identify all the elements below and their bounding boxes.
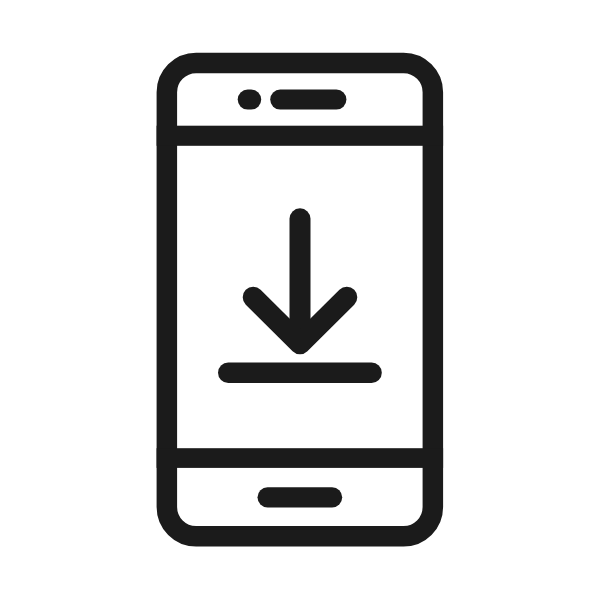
button[interactable]: Download to phone	[0, 0, 600, 600]
